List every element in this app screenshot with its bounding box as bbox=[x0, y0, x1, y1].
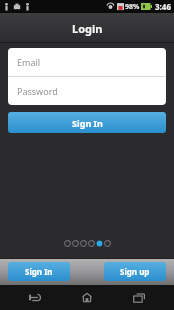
staticText: Password bbox=[17, 85, 58, 97]
staticText: Sign In bbox=[72, 117, 103, 129]
button[interactable]: Sign up bbox=[104, 262, 166, 281]
button[interactable]: Email bbox=[8, 48, 166, 76]
staticText: 98% bbox=[125, 2, 140, 12]
button[interactable]: Sign In bbox=[8, 112, 166, 133]
button[interactable]: Home bbox=[70, 285, 104, 310]
button[interactable]: Back bbox=[18, 285, 52, 310]
staticText: Email bbox=[17, 56, 41, 68]
button[interactable]: Password bbox=[8, 77, 166, 105]
staticText: Sign In bbox=[25, 266, 53, 277]
staticText: Login bbox=[72, 21, 103, 36]
staticText: 3:46 bbox=[155, 1, 171, 12]
staticText: Sign up bbox=[120, 266, 150, 277]
button[interactable]: Sign In bbox=[8, 262, 70, 281]
button[interactable]: Recent apps bbox=[122, 285, 156, 310]
